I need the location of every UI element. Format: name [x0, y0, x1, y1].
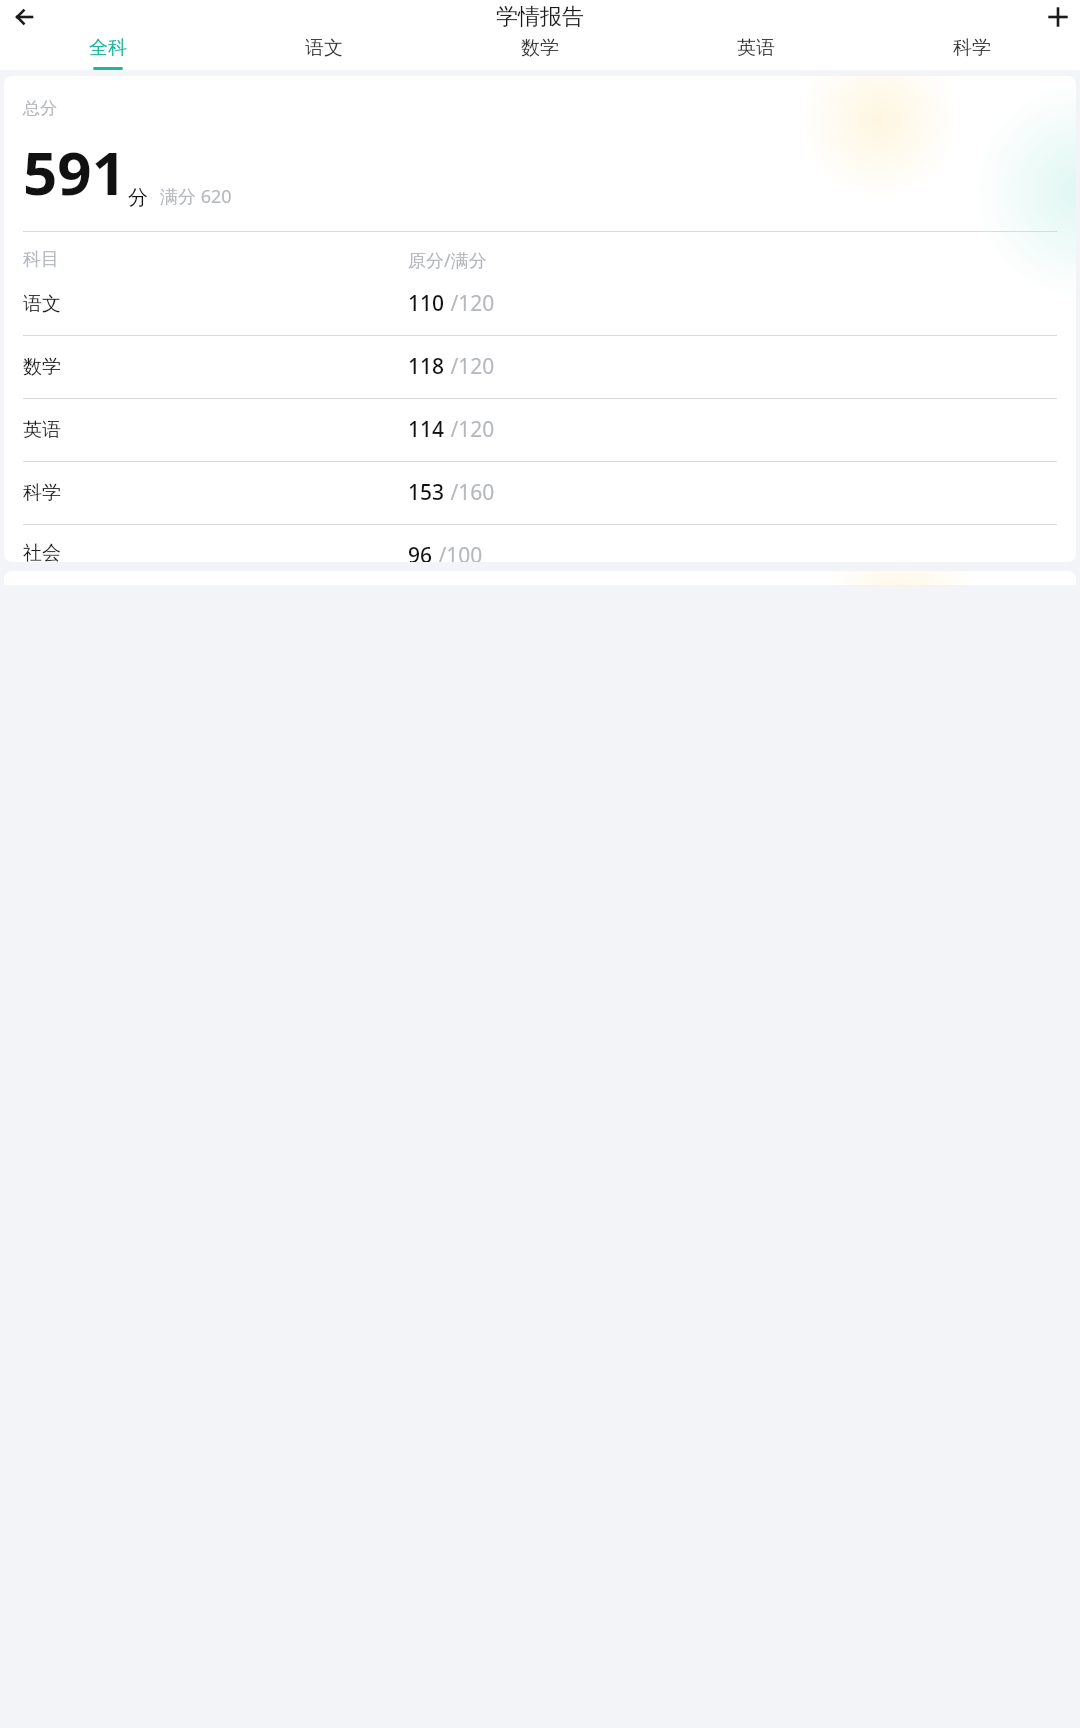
staticText: 英语 [737, 36, 775, 60]
button[interactable]: 社会 [23, 541, 1057, 562]
button[interactable]: 全科 [0, 33, 216, 70]
staticText: 原分/满分 [408, 248, 487, 273]
staticText: 语文 [305, 36, 343, 60]
staticText: 满分 620 [160, 184, 232, 209]
staticText: /100 [433, 541, 483, 562]
staticText: 社会 [23, 541, 133, 562]
staticText: 96 [408, 541, 433, 562]
button[interactable]: 语文 [23, 289, 1057, 318]
staticText: 591 [23, 131, 126, 213]
button[interactable]: Add [1041, 0, 1074, 33]
button[interactable] [4, 571, 1076, 585]
staticText: 153 [408, 478, 445, 507]
staticText: 全科 [89, 36, 127, 60]
staticText: /160 [445, 478, 495, 507]
staticText: 110 [408, 289, 445, 318]
button[interactable]: 英语 [23, 415, 1057, 444]
button[interactable]: 科学 [23, 478, 1057, 507]
staticText: 118 [408, 352, 445, 381]
staticText: 数学 [23, 355, 133, 379]
staticText: 分 [128, 185, 148, 210]
button[interactable]: 语文 [216, 33, 432, 67]
button[interactable]: 英语 [648, 33, 864, 67]
staticText: 英语 [23, 418, 133, 442]
staticText: 数学 [521, 36, 559, 60]
staticText: 科学 [953, 36, 991, 60]
staticText: 114 [408, 415, 445, 444]
staticText: 语文 [23, 292, 133, 316]
button[interactable]: Back [7, 0, 40, 33]
staticText: 科目 [23, 248, 133, 271]
staticText: 总分 [23, 98, 57, 119]
staticText: /120 [445, 289, 495, 318]
staticText: 科学 [23, 481, 133, 505]
button[interactable]: 数学 [432, 33, 648, 67]
staticText: 学情报告 [496, 3, 584, 31]
staticText: /120 [445, 415, 495, 444]
button[interactable]: 科学 [864, 33, 1080, 67]
button[interactable]: 总分 [4, 76, 1076, 562]
staticText: /120 [445, 352, 495, 381]
button[interactable]: 数学 [23, 352, 1057, 381]
